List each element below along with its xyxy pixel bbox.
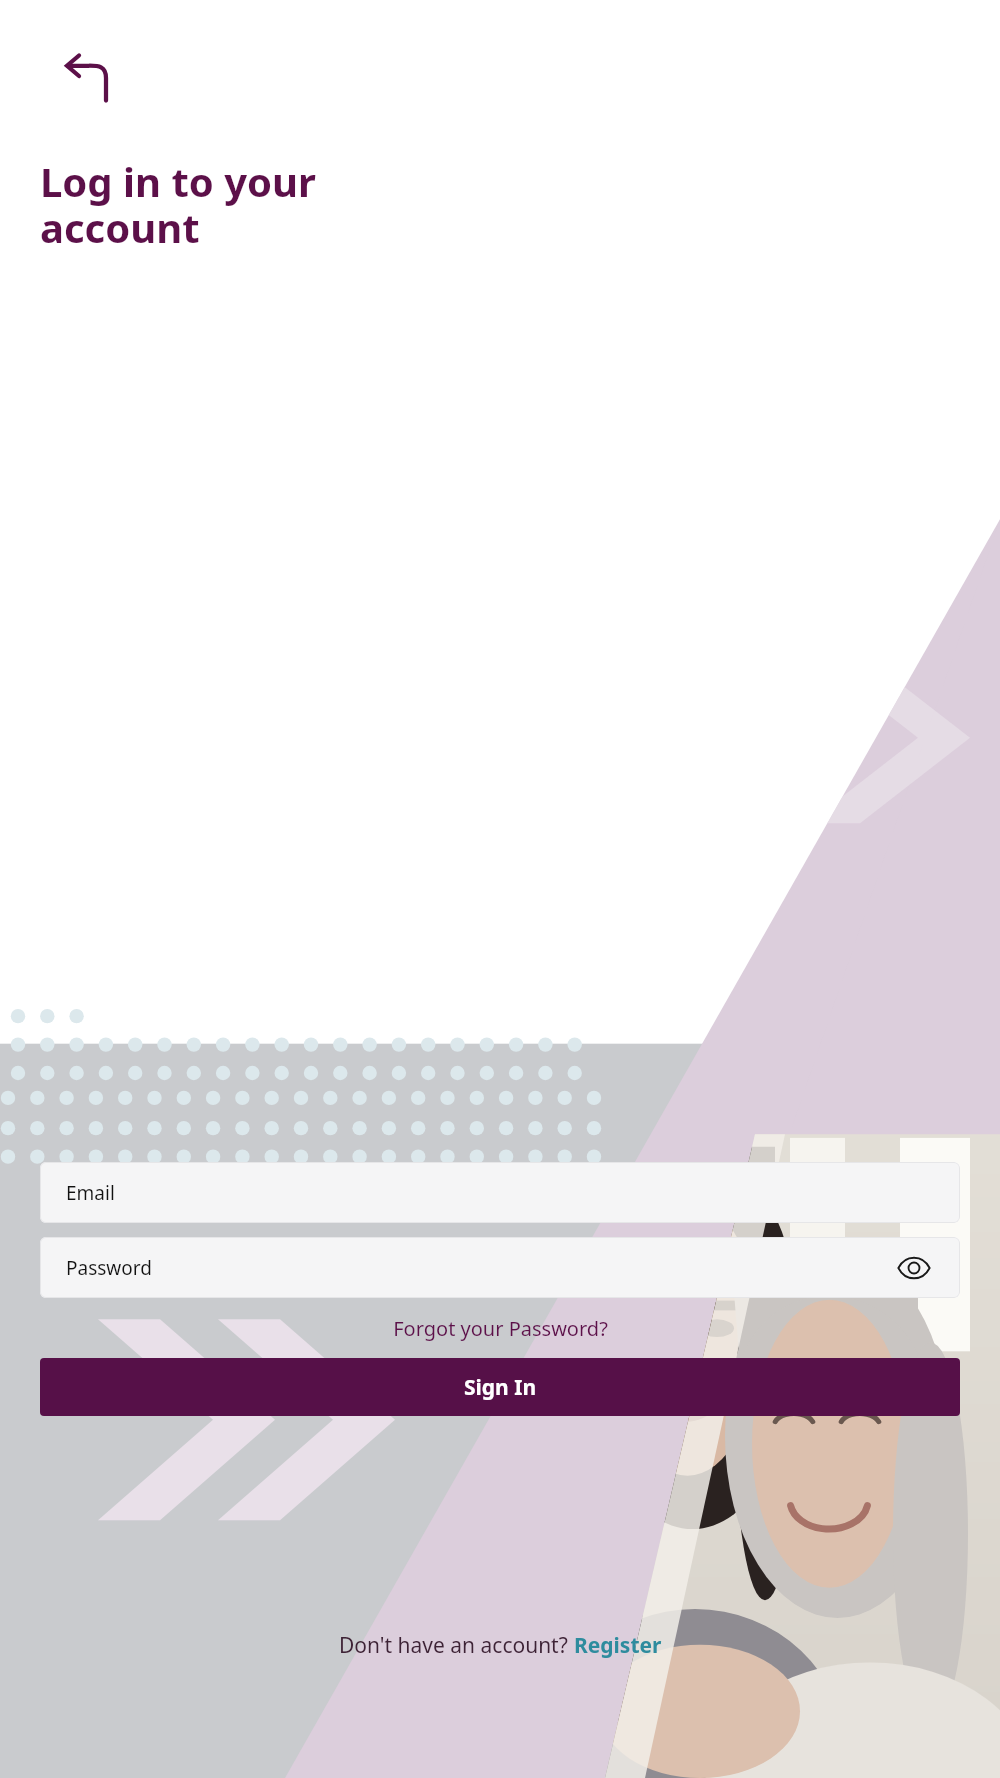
staticText: Register (574, 1631, 662, 1660)
button[interactable]: Sign In (40, 1358, 960, 1416)
staticText: Sign In (464, 1373, 537, 1402)
button[interactable]: Forgot your Password? (40, 1315, 960, 1342)
button[interactable]: Email (40, 1162, 960, 1223)
button[interactable]: Register (574, 1631, 662, 1660)
staticText: Password (66, 1255, 152, 1281)
staticText: Forgot your Password? (393, 1315, 608, 1342)
button[interactable]: Show password (894, 1248, 934, 1288)
button[interactable]: Password (40, 1237, 960, 1298)
staticText: Log in to your account (40, 154, 316, 255)
staticText: Don't have an account? (339, 1631, 574, 1660)
staticText: Email (66, 1180, 115, 1206)
button[interactable]: Back (56, 46, 120, 110)
